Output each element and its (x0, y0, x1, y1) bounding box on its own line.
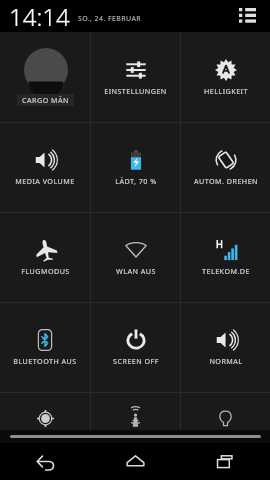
button[interactable]: SCREEN OFF (91, 303, 180, 392)
button[interactable]: TELEKOM.DE (181, 213, 270, 302)
staticText: FLUGMODUS (21, 266, 70, 276)
staticText: SCREEN OFF (113, 356, 159, 366)
staticText: 14:14 (9, 0, 70, 32)
button[interactable]: Location (0, 393, 90, 430)
button[interactable]: Flashlight (181, 393, 270, 430)
staticText: MEDIA VOLUME (15, 176, 75, 186)
staticText: TELEKOM.DE (202, 266, 250, 276)
button[interactable]: FLUGMODUS (0, 213, 90, 302)
button[interactable]: NORMAL (181, 303, 270, 392)
button[interactable]: WLAN AUS (91, 213, 180, 302)
staticText: SO., 24. FEBRUAR (78, 14, 142, 24)
staticText: EINSTELLUNGEN (104, 86, 167, 96)
button[interactable]: Open quick settings list (233, 2, 261, 30)
button[interactable]: LÄDT, 70 % (91, 123, 180, 212)
button[interactable]: MEDIA VOLUME (0, 123, 90, 212)
button[interactable]: Home (90, 443, 180, 480)
button[interactable]: EINSTELLUNGEN (91, 32, 180, 122)
staticText: HELLIGKEIT (204, 86, 248, 96)
button[interactable]: BLUETOOTH AUS (0, 303, 90, 392)
button[interactable]: CARGO MÄN (0, 32, 90, 122)
button[interactable]: Hotspot (91, 393, 180, 430)
staticText: WLAN AUS (116, 266, 156, 276)
button[interactable]: AUTOM. DREHEN (181, 123, 270, 212)
staticText: BLUETOOTH AUS (13, 356, 77, 366)
staticText: NORMAL (209, 356, 243, 366)
staticText: LÄDT, 70 % (115, 176, 157, 186)
staticText: AUTOM. DREHEN (194, 176, 258, 186)
button[interactable]: Recent apps (180, 443, 270, 480)
button[interactable]: Drag handle (10, 435, 261, 438)
button[interactable]: HELLIGKEIT (181, 32, 270, 122)
staticText: CARGO MÄN (22, 95, 69, 105)
button[interactable]: Back (0, 443, 90, 480)
